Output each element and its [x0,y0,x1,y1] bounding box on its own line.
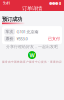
staticText: W [29,51,34,59]
staticText: 已支付 [48,36,60,41]
staticText: 票价 [5,36,13,41]
staticText: 订单详情 [22,5,42,12]
staticText: 服务由中国铁路客户服务中心提供 · 查看协议 [2,60,62,64]
staticText: ¥553.0 [16,36,27,41]
staticText: 分享行程给好友，一起出发吧 [6,44,58,49]
staticText: 车次 [5,29,13,34]
staticText: ●●● ▮ [49,1,61,5]
staticText: G101 北京南 [16,29,38,34]
button[interactable]: Share to WeChat [27,50,37,60]
staticText: 9:41 [3,0,10,6]
staticText: 预订成功 [2,16,22,23]
